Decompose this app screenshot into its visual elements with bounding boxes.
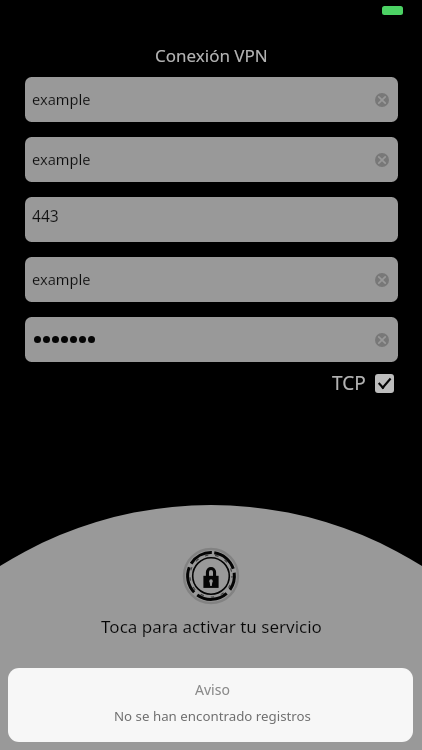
staticText: Conexión VPN — [155, 44, 268, 67]
button[interactable]: Activar servicio VPN — [181, 546, 241, 606]
button[interactable]: example — [25, 137, 398, 182]
button[interactable]: TCP — [327, 364, 398, 402]
button[interactable]: 443 — [25, 197, 398, 242]
staticText: 443 — [32, 205, 59, 226]
staticText: No se han encontrado registros — [114, 707, 311, 725]
button[interactable]: Borrar texto — [25, 317, 398, 362]
button[interactable]: Borrar texto — [369, 327, 395, 353]
button[interactable]: Borrar texto — [369, 147, 395, 173]
staticText: example — [32, 149, 91, 169]
button[interactable]: Borrar texto — [369, 87, 395, 113]
button[interactable]: example — [25, 77, 398, 122]
staticText: example — [32, 269, 91, 289]
button[interactable]: Borrar texto — [369, 267, 395, 293]
staticText: TCP — [332, 370, 366, 396]
staticText: Toca para activar tu servicio — [101, 615, 322, 638]
staticText: example — [32, 89, 91, 109]
button[interactable]: example — [25, 257, 398, 302]
staticText: Aviso — [195, 680, 230, 699]
